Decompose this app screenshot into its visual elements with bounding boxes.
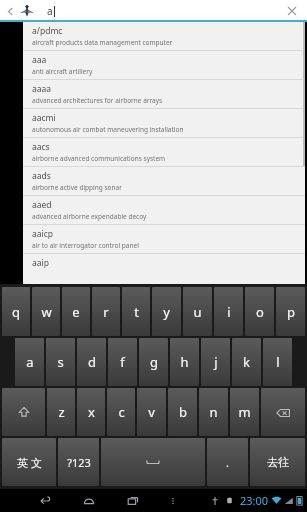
staticText: x bbox=[88, 403, 95, 421]
staticText: g bbox=[150, 353, 158, 371]
staticText: aaicp bbox=[32, 228, 54, 240]
button[interactable]: n bbox=[199, 388, 228, 436]
button[interactable]: e bbox=[62, 287, 90, 336]
staticText: k bbox=[243, 353, 250, 371]
staticText: airborne advanced communications system bbox=[32, 154, 166, 163]
button[interactable]: aaaa bbox=[23, 80, 305, 108]
button[interactable]: aaicp bbox=[23, 225, 305, 253]
staticText: autonomous air combat maneuvering instal… bbox=[32, 125, 184, 134]
staticText: o bbox=[256, 303, 264, 321]
staticText: t bbox=[134, 303, 139, 321]
staticText: anti aircraft artillery bbox=[32, 67, 93, 76]
button[interactable]: j bbox=[201, 338, 230, 386]
button[interactable]: aaip bbox=[23, 254, 305, 270]
button[interactable]: b bbox=[168, 388, 197, 436]
staticText: advanced airborne expendable decoy bbox=[32, 212, 147, 221]
button[interactable]: a/pdmc bbox=[23, 22, 305, 50]
button[interactable]: v bbox=[137, 388, 166, 436]
button[interactable]: Clear bbox=[281, 0, 303, 22]
button[interactable]: u bbox=[183, 287, 212, 336]
staticText: j bbox=[214, 353, 218, 371]
staticText: v bbox=[148, 403, 155, 421]
button[interactable]: y bbox=[152, 287, 181, 336]
button[interactable]: More options bbox=[164, 492, 182, 510]
button[interactable]: App logo bbox=[17, 1, 37, 21]
button[interactable]: i bbox=[214, 287, 243, 336]
staticText: r bbox=[103, 303, 109, 321]
staticText: c bbox=[118, 403, 125, 421]
staticText: q bbox=[12, 303, 20, 321]
button[interactable]: w bbox=[32, 287, 60, 336]
staticText: ?123 bbox=[67, 455, 91, 470]
button[interactable]: . bbox=[207, 438, 248, 486]
staticText: aircraft products data management comput… bbox=[32, 38, 173, 47]
button[interactable]: q bbox=[2, 287, 30, 336]
staticText: l bbox=[276, 353, 280, 371]
button[interactable]: 去往 bbox=[250, 438, 305, 486]
button[interactable]: Back bbox=[34, 490, 56, 512]
button[interactable]: Delete bbox=[261, 388, 305, 436]
button[interactable]: aaa bbox=[23, 51, 305, 79]
staticText: 23:00 bbox=[240, 493, 269, 508]
button[interactable]: a bbox=[15, 338, 44, 386]
button[interactable]: k bbox=[232, 338, 261, 386]
button[interactable]: Home bbox=[78, 490, 100, 512]
staticText: a/pdmc bbox=[32, 25, 63, 37]
staticText: . bbox=[226, 455, 229, 470]
button[interactable]: ?123 bbox=[58, 438, 99, 486]
button[interactable]: t bbox=[122, 287, 150, 336]
staticText: w bbox=[41, 303, 52, 321]
button[interactable]: d bbox=[77, 338, 106, 386]
staticText: d bbox=[88, 353, 96, 371]
button[interactable]: 英 文 bbox=[2, 438, 56, 486]
staticText: air to air interrogator control panel bbox=[32, 241, 139, 250]
button[interactable]: aads bbox=[23, 167, 305, 195]
staticText: m bbox=[238, 403, 251, 421]
staticText: aaa bbox=[32, 54, 47, 66]
staticText: advanced architectures for airborne arra… bbox=[32, 96, 163, 105]
staticText: i bbox=[227, 303, 231, 321]
button[interactable]: aaed bbox=[23, 196, 305, 224]
staticText: 去往 bbox=[267, 455, 289, 469]
button[interactable]: aacs bbox=[23, 138, 305, 166]
button[interactable]: p bbox=[276, 287, 305, 336]
button[interactable]: Shift bbox=[2, 388, 45, 436]
button[interactable]: Space bbox=[101, 438, 205, 486]
staticText: a bbox=[26, 353, 34, 371]
staticText: y bbox=[163, 303, 170, 321]
staticText: b bbox=[179, 403, 187, 421]
staticText: aaed bbox=[32, 199, 52, 211]
staticText: e bbox=[72, 303, 80, 321]
staticText: s bbox=[57, 353, 64, 371]
button[interactable]: x bbox=[77, 388, 105, 436]
button[interactable]: g bbox=[139, 338, 168, 386]
staticText: f bbox=[120, 353, 125, 371]
button[interactable]: Recents bbox=[122, 490, 144, 512]
staticText: n bbox=[209, 403, 218, 421]
staticText: aaip bbox=[32, 257, 49, 269]
staticText: p bbox=[287, 303, 295, 321]
button[interactable]: z bbox=[47, 388, 75, 436]
staticText: airborne active dipping sonar bbox=[32, 183, 122, 192]
button[interactable]: Back bbox=[3, 4, 17, 18]
button[interactable]: f bbox=[108, 338, 137, 386]
staticText: aacmi bbox=[32, 112, 56, 124]
button[interactable]: l bbox=[263, 338, 292, 386]
staticText: aaaa bbox=[32, 83, 52, 95]
button[interactable]: h bbox=[170, 338, 199, 386]
staticText: u bbox=[193, 303, 202, 321]
button[interactable]: m bbox=[230, 388, 259, 436]
staticText: z bbox=[58, 403, 65, 421]
button[interactable]: s bbox=[46, 338, 75, 386]
staticText: 英 文 bbox=[17, 455, 42, 470]
button[interactable]: c bbox=[107, 388, 135, 436]
staticText: aads bbox=[32, 170, 51, 182]
staticText: aacs bbox=[32, 141, 50, 153]
staticText: a bbox=[47, 4, 53, 18]
staticText: h bbox=[180, 353, 189, 371]
button[interactable]: r bbox=[92, 287, 120, 336]
button[interactable]: o bbox=[245, 287, 274, 336]
button[interactable]: aacmi bbox=[23, 109, 305, 137]
